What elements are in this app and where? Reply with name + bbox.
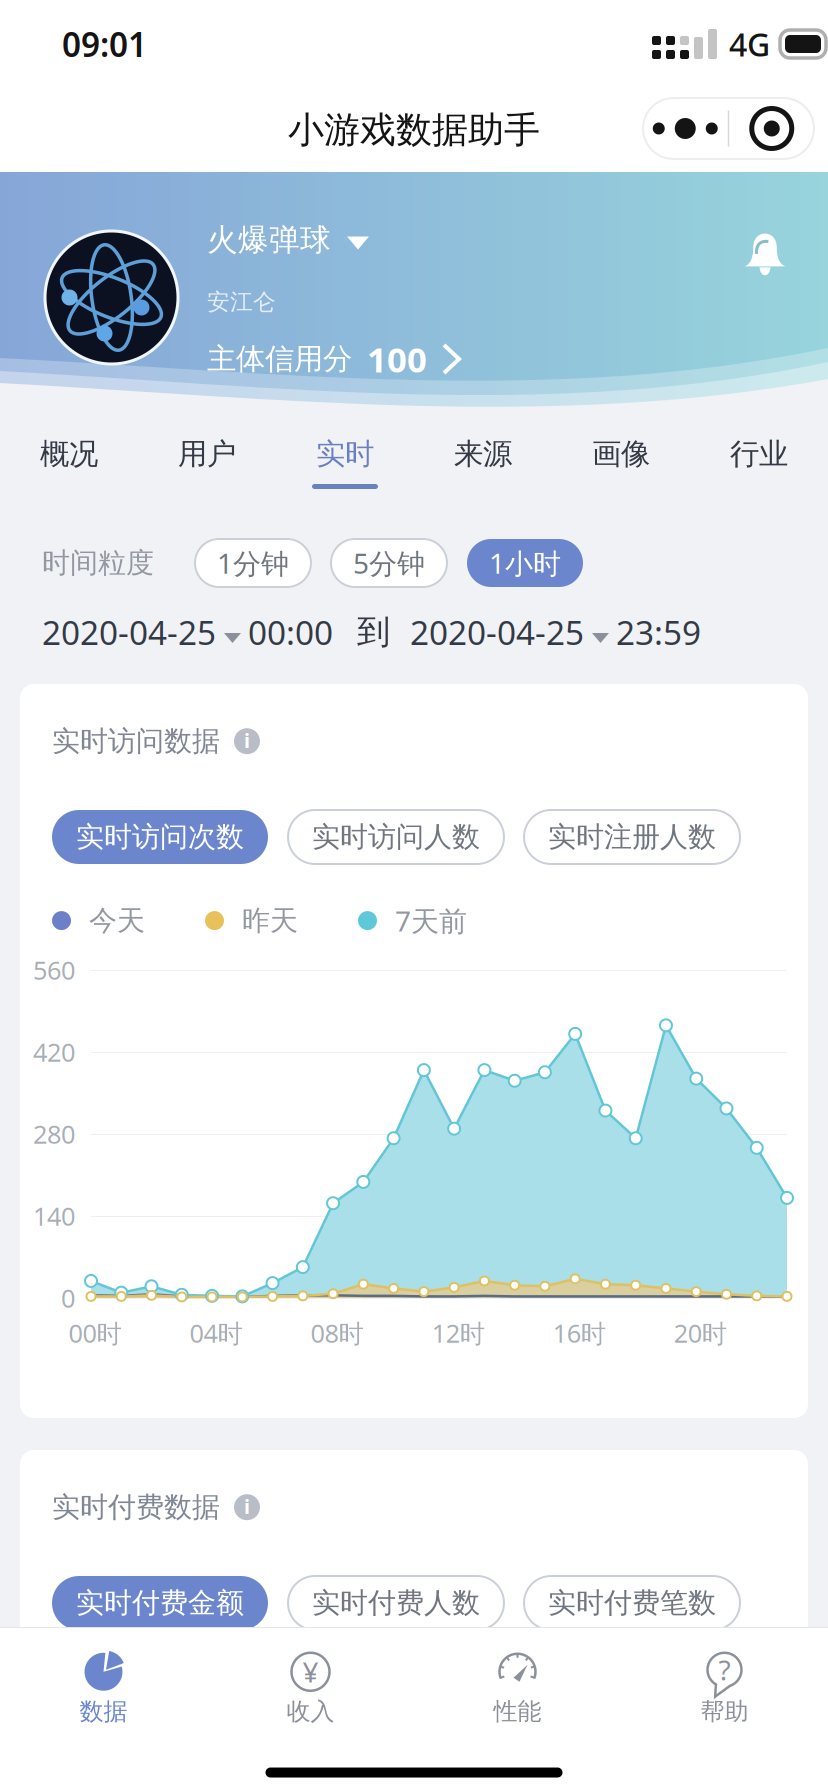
button[interactable]: ¥ [207,1641,414,1740]
button[interactable]: 实时付费笔数 [524,1576,740,1630]
staticText: 12时 [432,1316,485,1350]
staticText: 2020-04-25 [42,610,216,654]
button[interactable]: 概况 [0,432,138,516]
staticText: 到 [357,611,390,652]
staticText: 来源 [454,436,512,472]
staticText: 实时访问次数 [76,820,244,854]
staticText: 16时 [553,1316,606,1350]
staticText: 0 [61,1281,75,1315]
button[interactable]: 2020-04-25 [410,608,609,656]
staticText: 火爆弹球 [207,221,331,259]
button[interactable]: 行业 [690,432,828,516]
staticText: 行业 [730,436,788,472]
staticText: 小游戏数据助手 [288,108,540,152]
staticText: 4G [729,23,770,65]
staticText: 09:01 [62,22,147,66]
staticText: i [244,727,250,753]
staticText: 7天前 [395,902,467,939]
staticText: 画像 [592,436,650,472]
button[interactable]: 2020-04-25 [42,608,241,656]
button[interactable]: 实时付费人数 [288,1576,504,1630]
button[interactable]: ? [621,1641,828,1740]
staticText: 140 [33,1199,75,1233]
button[interactable]: More [643,98,728,159]
button[interactable]: Notifications [744,228,786,276]
staticText: 实时付费数据 [52,1490,220,1524]
staticText: 00时 [68,1316,121,1350]
staticText: 安江仑 [207,288,276,316]
staticText: 560 [33,953,75,987]
staticText: 08时 [311,1316,364,1350]
button[interactable]: 数据 [0,1641,207,1740]
button[interactable]: 实时访问次数 [52,810,268,864]
button[interactable]: 用户 [138,432,276,516]
staticText: 性能 [493,1697,541,1726]
staticText: 2020-04-25 [410,610,584,654]
button[interactable]: 画像 [552,432,690,516]
staticText: 00:00 [248,610,333,654]
staticText: 实时付费笔数 [548,1586,716,1620]
staticText: ¥ [302,1653,318,1690]
button[interactable]: 实时付费金额 [52,1576,268,1630]
staticText: 收入 [286,1697,334,1726]
button[interactable]: 实时注册人数 [524,810,740,864]
staticText: 实时付费金额 [76,1586,244,1620]
staticText: ? [718,1651,730,1688]
staticText: 帮助 [700,1697,748,1726]
staticText: i [244,1493,250,1519]
staticText: 实时 [316,436,374,472]
button[interactable]: 实时访问人数 [288,810,504,864]
button[interactable]: 性能 [414,1641,621,1740]
staticText: 1小时 [489,544,561,582]
staticText: 实时付费人数 [312,1586,480,1620]
button[interactable]: 主体信用分 [207,335,461,383]
button[interactable]: Close [729,98,814,159]
staticText: 用户 [178,436,236,472]
button[interactable]: 1小时 [467,539,583,587]
staticText: 实时访问人数 [312,820,480,854]
staticText: 420 [33,1035,75,1069]
staticText: 实时注册人数 [548,820,716,854]
staticText: 23:59 [616,610,701,654]
button[interactable]: 5分钟 [331,539,447,587]
button[interactable]: 实时 [276,432,414,516]
staticText: 昨天 [242,903,298,938]
staticText: 数据 [79,1697,127,1726]
staticText: 5分钟 [353,544,425,582]
button[interactable]: 火爆弹球 [207,218,369,262]
staticText: 1分钟 [217,544,289,582]
staticText: 04时 [189,1316,242,1350]
staticText: 20时 [674,1316,727,1350]
staticText: 100 [367,336,427,382]
staticText: 主体信用分 [207,341,352,377]
staticText: 时间粒度 [42,546,154,580]
staticText: 280 [33,1117,75,1151]
button[interactable]: 来源 [414,432,552,516]
staticText: 实时访问数据 [52,724,220,758]
staticText: 概况 [40,436,98,472]
staticText: 今天 [89,903,145,938]
button[interactable]: 1分钟 [195,539,311,587]
